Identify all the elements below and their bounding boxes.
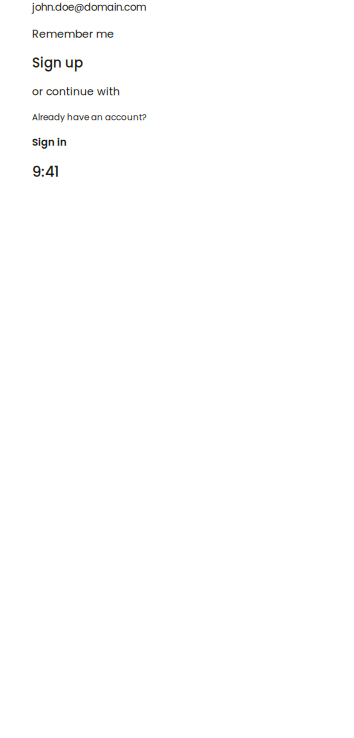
- staticText: Sign up: [32, 53, 83, 72]
- staticText: or continue with: [32, 84, 120, 99]
- staticText: Remember me: [32, 26, 114, 41]
- staticText: Already have an account?: [32, 111, 147, 123]
- staticText: 9:41: [32, 161, 59, 182]
- staticText: Sign in: [32, 135, 67, 149]
- staticText: john.doe@domain.com: [32, 0, 146, 14]
